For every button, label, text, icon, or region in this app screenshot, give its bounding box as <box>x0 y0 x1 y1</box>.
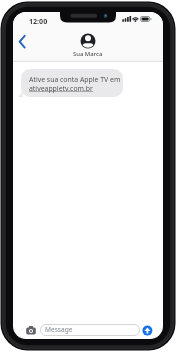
button[interactable] <box>15 33 32 50</box>
staticText: Ative sua conta Apple TV em <box>29 75 121 84</box>
button[interactable] <box>142 325 153 336</box>
button[interactable] <box>74 31 102 58</box>
staticText: Sua Marca <box>73 50 103 58</box>
button[interactable] <box>25 325 37 336</box>
staticText: 12:00 <box>29 16 48 26</box>
button[interactable] <box>40 324 140 336</box>
staticText: Message <box>45 325 73 334</box>
button[interactable]: ativeappletv.com.br <box>29 84 93 93</box>
